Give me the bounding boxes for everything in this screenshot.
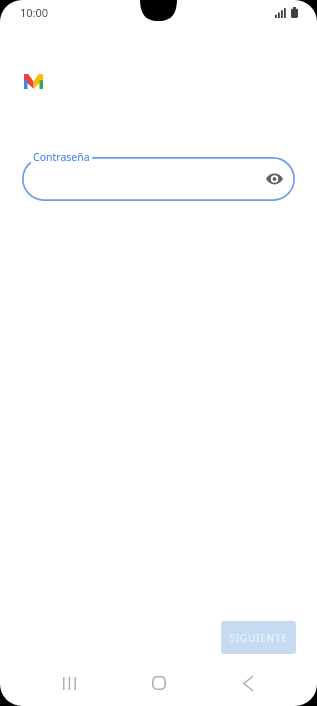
button[interactable]: Mostrar contraseña <box>259 164 289 194</box>
staticText: 10:00 <box>20 5 49 20</box>
button[interactable]: Recientes <box>48 662 90 704</box>
button[interactable]: Mostrar contraseña <box>22 157 295 201</box>
staticText: SIGUIENTE <box>229 631 288 645</box>
button[interactable]: SIGUIENTE <box>221 621 296 654</box>
button[interactable]: Inicio <box>138 662 180 704</box>
button[interactable]: Atrás <box>227 662 269 704</box>
staticText: Contraseña <box>33 150 90 164</box>
